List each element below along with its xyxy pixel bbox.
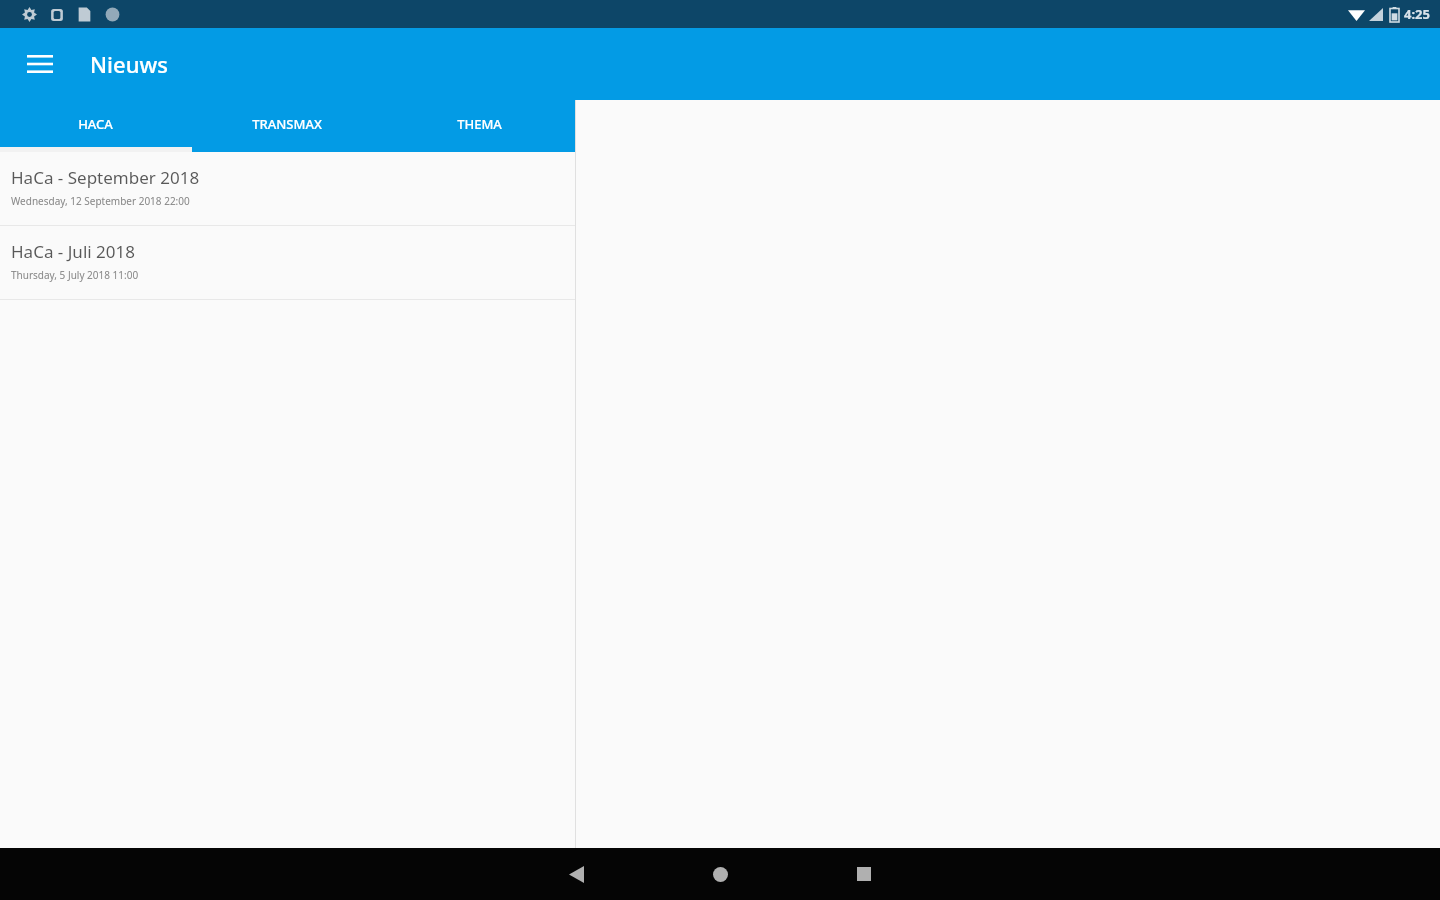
button[interactable]: THEMA — [383, 100, 575, 147]
button[interactable]: Open navigation menu — [14, 38, 66, 90]
button[interactable]: HACA — [0, 100, 191, 147]
staticText: 4:25 — [1404, 5, 1430, 23]
staticText: HACA — [78, 115, 113, 133]
button[interactable]: Home — [684, 848, 756, 900]
staticText: TRANSMAX — [252, 115, 322, 133]
staticText: THEMA — [457, 115, 502, 133]
button[interactable]: HaCa - September 2018 — [0, 152, 575, 225]
staticText: HaCa - Juli 2018 — [11, 240, 135, 263]
button[interactable]: HaCa - Juli 2018 — [0, 226, 575, 299]
staticText: Wednesday, 12 September 2018 22:00 — [11, 194, 190, 208]
button[interactable]: TRANSMAX — [191, 100, 383, 147]
staticText: Nieuws — [90, 49, 168, 79]
staticText: HaCa - September 2018 — [11, 166, 200, 189]
staticText: Thursday, 5 July 2018 11:00 — [11, 268, 139, 282]
button[interactable]: Back — [540, 848, 612, 900]
button[interactable]: Recent apps — [828, 848, 900, 900]
